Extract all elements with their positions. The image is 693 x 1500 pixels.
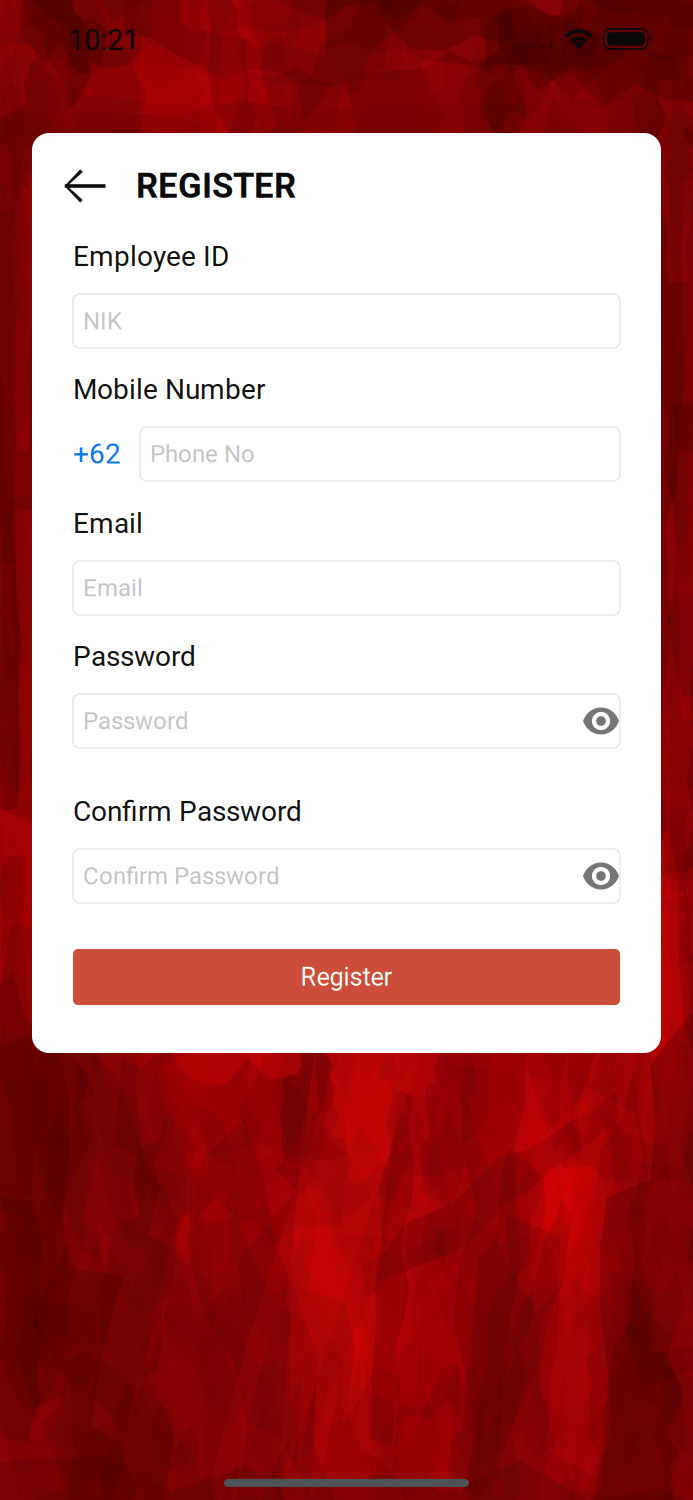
staticText: Register [300, 962, 392, 992]
button[interactable]: NIK [73, 294, 620, 348]
button[interactable]: Phone No [140, 427, 620, 481]
staticText: Confirm Password [73, 795, 302, 828]
staticText: Email [83, 574, 143, 602]
staticText: Email [73, 507, 143, 540]
button[interactable]: Password [73, 694, 620, 748]
button[interactable]: Confirm Password [73, 849, 620, 903]
button[interactable]: Email [73, 561, 620, 615]
button[interactable]: Back [73, 166, 136, 206]
staticText: +62 [73, 438, 121, 470]
staticText: 10:21 [68, 23, 139, 57]
staticText: REGISTER [136, 166, 296, 206]
staticText: Password [83, 707, 189, 735]
staticText: Employee ID [73, 240, 229, 273]
staticText: Password [73, 640, 196, 673]
staticText: Mobile Number [73, 373, 265, 406]
staticText: NIK [83, 307, 122, 335]
staticText: Phone No [150, 440, 255, 468]
staticText: Confirm Password [83, 862, 280, 890]
button[interactable]: Register [73, 949, 620, 1005]
